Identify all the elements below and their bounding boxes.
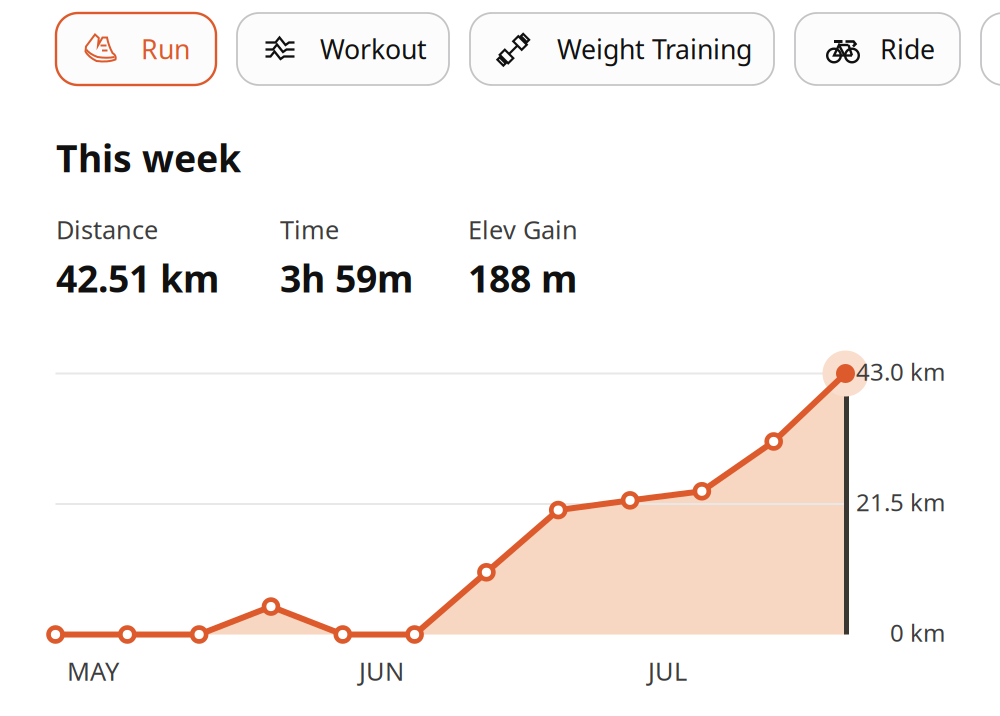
- staticText: Weight Training: [557, 31, 752, 67]
- staticText: JUN: [359, 654, 404, 688]
- button[interactable]: Ride: [795, 13, 960, 85]
- staticText: Elev Gain: [468, 213, 578, 246]
- staticText: 42.51 km: [56, 253, 219, 303]
- staticText: This week: [56, 133, 241, 183]
- staticText: 43.0 km: [856, 355, 945, 387]
- staticText: JUL: [648, 654, 687, 688]
- staticText: Time: [280, 213, 339, 246]
- staticText: Workout: [320, 31, 427, 67]
- staticText: MAY: [67, 654, 119, 688]
- button[interactable]: More activity types: [981, 13, 1000, 85]
- staticText: Ride: [880, 31, 935, 67]
- button[interactable]: Weight Training: [470, 13, 774, 85]
- staticText: 188 m: [468, 253, 577, 303]
- staticText: Distance: [56, 213, 158, 246]
- staticText: 0 km: [890, 616, 945, 648]
- staticText: 3h 59m: [280, 253, 413, 303]
- button[interactable]: Workout: [237, 13, 449, 85]
- button[interactable]: Run: [56, 13, 216, 85]
- staticText: 21.5 km: [856, 486, 945, 518]
- staticText: Run: [141, 31, 190, 67]
